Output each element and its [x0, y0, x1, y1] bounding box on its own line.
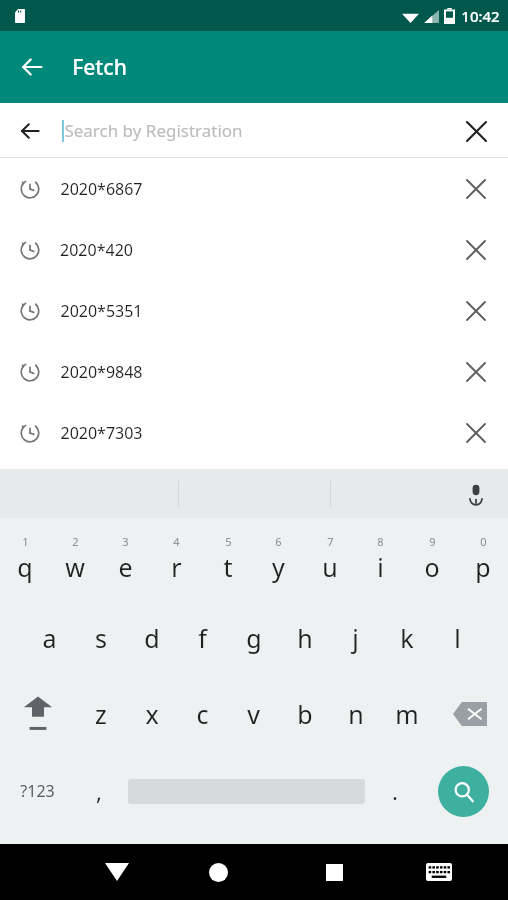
staticText: Search by Registration — [64, 119, 243, 142]
button[interactable]: Close search — [8, 109, 52, 153]
button[interactable]: Back — [73, 844, 160, 900]
button[interactable]: s — [75, 600, 126, 676]
button[interactable]: n — [330, 676, 381, 752]
button[interactable]: Remove 2020*5351 from history — [454, 289, 498, 333]
button[interactable]: 2 — [50, 518, 100, 600]
button[interactable]: 0 — [457, 518, 508, 600]
staticText: . — [392, 776, 398, 806]
staticText: 9 — [429, 534, 436, 549]
staticText: ?123 — [20, 780, 55, 802]
button[interactable]: x — [126, 676, 177, 752]
button[interactable]: j — [330, 600, 381, 676]
staticText: q — [17, 550, 33, 584]
button[interactable]: 2020*6867 — [0, 158, 508, 219]
staticText: h — [297, 621, 313, 655]
button[interactable]: Space — [123, 752, 370, 830]
staticText: c — [196, 697, 209, 731]
button[interactable]: Shift — [0, 676, 75, 752]
button[interactable]: v — [228, 676, 279, 752]
staticText: j — [352, 621, 359, 655]
button[interactable]: c — [177, 676, 228, 752]
button[interactable]: b — [279, 676, 330, 752]
staticText: 2020*420 — [60, 239, 133, 261]
button[interactable]: 5 — [202, 518, 253, 600]
staticText: o — [424, 550, 440, 584]
button[interactable]: Remove 2020*9848 from history — [454, 350, 498, 394]
staticText: 10:42 — [461, 6, 500, 26]
button[interactable]: 3 — [100, 518, 151, 600]
staticText: 0 — [480, 534, 487, 549]
button[interactable]: Remove 2020*6867 from history — [454, 167, 498, 211]
staticText: 8 — [377, 534, 384, 549]
staticText: 4 — [173, 534, 180, 549]
staticText: e — [118, 550, 133, 584]
staticText: z — [95, 697, 107, 731]
button[interactable]: 2020*420 — [0, 219, 508, 280]
button[interactable]: Remove 2020*420 from history — [454, 228, 498, 272]
staticText: 5 — [225, 534, 232, 549]
button[interactable]: 6 — [253, 518, 304, 600]
staticText: t — [223, 550, 233, 584]
button[interactable]: Search — [419, 752, 508, 830]
staticText: 6 — [275, 534, 282, 549]
staticText: k — [400, 621, 414, 655]
staticText: Fetch — [72, 53, 127, 82]
button[interactable]: 2020*7303 — [0, 402, 508, 463]
button[interactable]: , — [74, 752, 123, 830]
button[interactable]: 7 — [304, 518, 355, 600]
staticText: 2020*5351 — [60, 300, 143, 322]
button[interactable]: f — [177, 600, 228, 676]
button[interactable]: Clear text — [454, 109, 498, 153]
button[interactable]: Home — [160, 844, 276, 900]
staticText: y — [272, 550, 285, 584]
staticText: 3 — [122, 534, 129, 549]
button[interactable]: Back — [8, 43, 56, 91]
button[interactable]: ?123 — [0, 752, 74, 830]
button[interactable]: Recent apps — [276, 844, 392, 900]
button[interactable]: . — [370, 752, 419, 830]
staticText: r — [171, 550, 182, 584]
button[interactable]: 1 — [0, 518, 50, 600]
button[interactable]: 8 — [355, 518, 406, 600]
staticText: w — [65, 550, 85, 584]
button[interactable]: l — [432, 600, 483, 676]
button[interactable]: 4 — [151, 518, 202, 600]
staticText: 7 — [327, 534, 334, 549]
staticText: 2020*7303 — [60, 422, 143, 444]
button[interactable]: m — [381, 676, 432, 752]
staticText: i — [377, 550, 384, 584]
staticText: b — [297, 697, 313, 731]
staticText: d — [144, 621, 160, 655]
button[interactable]: 2020*5351 — [0, 280, 508, 341]
staticText: l — [454, 621, 461, 655]
staticText: f — [198, 621, 207, 655]
staticText: n — [348, 697, 364, 731]
button[interactable]: a — [24, 600, 75, 676]
staticText: 2 — [72, 534, 79, 549]
staticText: 2020*9848 — [60, 361, 143, 383]
staticText: p — [475, 550, 491, 584]
staticText: a — [42, 621, 57, 655]
button[interactable]: Backspace — [432, 676, 508, 752]
button[interactable]: 9 — [406, 518, 457, 600]
staticText: v — [247, 697, 260, 731]
button[interactable]: h — [279, 600, 330, 676]
staticText: , — [96, 776, 102, 806]
button[interactable]: Remove 2020*7303 from history — [454, 411, 498, 455]
button[interactable]: d — [126, 600, 177, 676]
button[interactable]: Switch keyboard — [392, 844, 486, 900]
button[interactable]: z — [75, 676, 126, 752]
staticText: s — [95, 621, 107, 655]
staticText: g — [246, 621, 262, 655]
staticText: u — [322, 550, 338, 584]
staticText: x — [145, 697, 159, 731]
button[interactable]: Voice input — [454, 472, 498, 516]
staticText: 2020*6867 — [60, 178, 143, 200]
button[interactable]: g — [228, 600, 279, 676]
staticText: 1 — [22, 534, 29, 549]
staticText: m — [395, 697, 419, 731]
button[interactable]: 2020*9848 — [0, 341, 508, 402]
button[interactable]: k — [381, 600, 432, 676]
